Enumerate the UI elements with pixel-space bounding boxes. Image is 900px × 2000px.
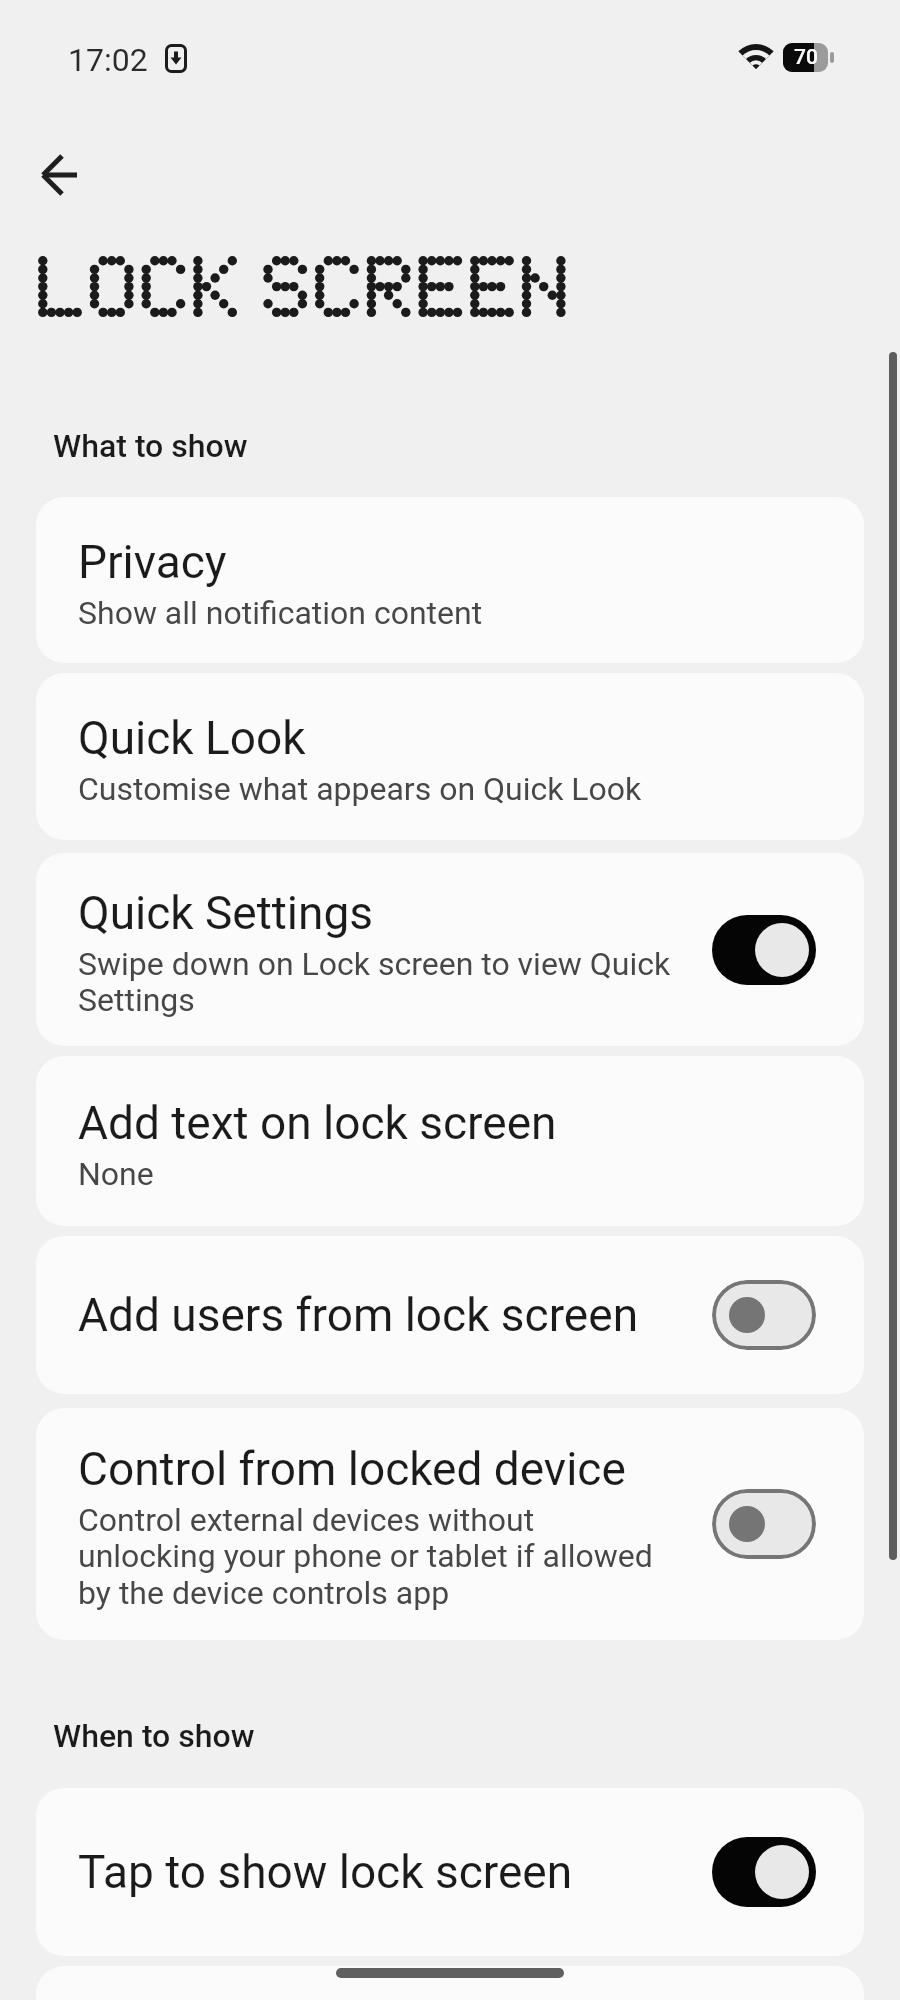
staticText: Add text on lock screen — [78, 1096, 557, 1150]
button[interactable]: Add text on lock screen — [36, 1056, 864, 1226]
staticText: Quick Settings — [78, 886, 373, 940]
button[interactable]: Add users from lock screen — [36, 1236, 864, 1394]
staticText: Quick Look — [78, 711, 306, 765]
staticText: Show all notification content — [78, 594, 483, 632]
staticText: None — [78, 1155, 154, 1193]
staticText: 70 — [794, 45, 818, 70]
staticText: Tap to show lock screen — [78, 1845, 573, 1899]
staticText: Customise what appears on Quick Look — [78, 770, 642, 808]
staticText: Control external devices without unlocki… — [78, 1501, 653, 1612]
button[interactable] — [712, 1837, 816, 1907]
button[interactable]: Control from locked device — [36, 1408, 864, 1640]
staticText: When to show — [53, 1717, 255, 1755]
staticText: Swipe down on Lock screen to view Quick … — [78, 945, 671, 1019]
staticText: Add users from lock screen — [78, 1288, 639, 1342]
button[interactable]: Quick Settings — [36, 853, 864, 1046]
button[interactable] — [712, 915, 816, 985]
staticText: Control from locked device — [78, 1442, 626, 1496]
staticText: 17:02 — [68, 41, 148, 79]
button[interactable] — [712, 1280, 816, 1350]
button[interactable] — [712, 1489, 816, 1559]
button[interactable]: Tap to show lock screen — [36, 1788, 864, 1956]
button[interactable] — [30, 145, 90, 205]
button[interactable]: Privacy — [36, 497, 864, 663]
staticText: Privacy — [78, 535, 227, 589]
button[interactable]: Quick Look — [36, 673, 864, 840]
staticText: What to show — [53, 427, 248, 465]
